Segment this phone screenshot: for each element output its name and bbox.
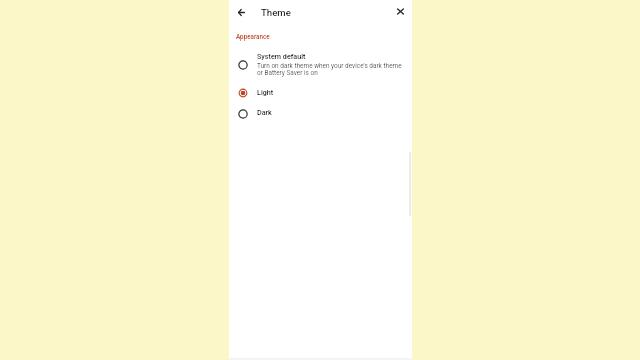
button[interactable]: System default [229,53,412,79]
staticText: Light [257,88,274,96]
staticText: System default [257,52,306,60]
staticText: Dark [257,108,272,116]
button[interactable]: Navigate up [233,4,249,20]
staticText: Theme [261,7,291,18]
button[interactable]: Close [392,3,408,19]
staticText: Turn on dark theme when your device's da… [257,62,404,76]
button[interactable]: Light [229,82,412,103]
staticText: Appearance [236,33,270,40]
button[interactable]: Dark [229,103,412,124]
